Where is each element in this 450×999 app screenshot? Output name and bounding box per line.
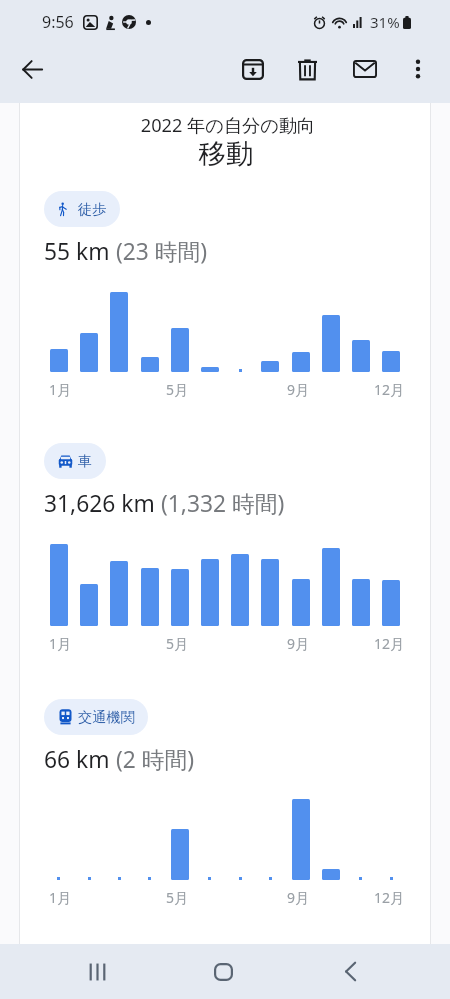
staticText: 1月 [49,634,72,652]
staticText: 12月 [374,634,405,652]
staticText: 徒歩 [78,200,107,218]
staticText: (2 時間) [110,744,195,775]
staticText: 66 km [44,744,110,775]
staticText: 31% [370,12,400,32]
button[interactable]: Delete [287,49,327,89]
button[interactable]: 車 [44,443,106,479]
staticText: 31,626 km [44,488,155,519]
button[interactable]: Back [10,47,54,91]
staticText: 5月 [166,888,189,906]
staticText: (1,332 時間) [155,488,285,519]
button[interactable]: Mail [345,49,385,89]
staticText: 1月 [49,380,72,398]
button[interactable]: 徒歩 [44,191,120,227]
staticText: 55 km [44,236,110,267]
staticText: 1月 [49,888,72,906]
staticText: 移動 [21,137,431,172]
button[interactable]: 交通機関 [44,699,148,735]
button[interactable]: Home [189,944,257,999]
staticText: 12月 [374,888,405,906]
staticText: 交通機関 [78,708,135,726]
staticText: 車 [78,452,93,470]
button[interactable]: Archive [233,49,273,89]
button[interactable]: Recent apps [63,944,131,999]
button[interactable]: Back [316,944,384,999]
staticText: 9月 [287,634,310,652]
staticText: 9月 [287,380,310,398]
button[interactable]: More options [398,49,438,89]
staticText: 2022 年の自分の動向 [23,113,433,138]
staticText: 9:56 [42,11,74,33]
staticText: 9月 [287,888,310,906]
staticText: (23 時間) [110,236,208,267]
staticText: 5月 [166,634,189,652]
staticText: 5月 [166,380,189,398]
staticText: 12月 [374,380,405,398]
